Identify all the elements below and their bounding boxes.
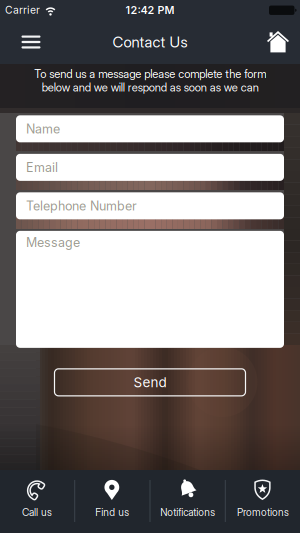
textField[interactable]: Telephone Number [26, 198, 284, 213]
staticText: Name [26, 121, 60, 136]
staticText: Promotions [237, 506, 289, 518]
button[interactable]: Call us [0, 470, 74, 533]
button[interactable]: Notifications [150, 470, 225, 533]
button[interactable]: Menu [14, 27, 48, 57]
staticText: Contact Us [112, 33, 187, 51]
staticText: Send [133, 374, 166, 390]
button[interactable]: Send [54, 369, 245, 396]
textField[interactable]: Message [26, 235, 284, 250]
staticText: Message [26, 235, 80, 250]
staticText: 12:42 PM [125, 3, 174, 17]
staticText: Call us [22, 506, 52, 518]
textField[interactable]: Name [26, 121, 284, 136]
staticText: To send us a message please complete the… [34, 67, 266, 94]
staticText: Email [26, 160, 58, 175]
staticText: Notifications [160, 506, 215, 518]
button[interactable]: Find us [75, 470, 149, 533]
staticText: Telephone Number [26, 198, 137, 213]
staticText: Carrier [5, 4, 40, 16]
textField[interactable]: Email [26, 160, 284, 175]
button[interactable]: Home [265, 30, 289, 54]
button[interactable]: Promotions [226, 470, 300, 533]
staticText: Find us [95, 506, 129, 518]
